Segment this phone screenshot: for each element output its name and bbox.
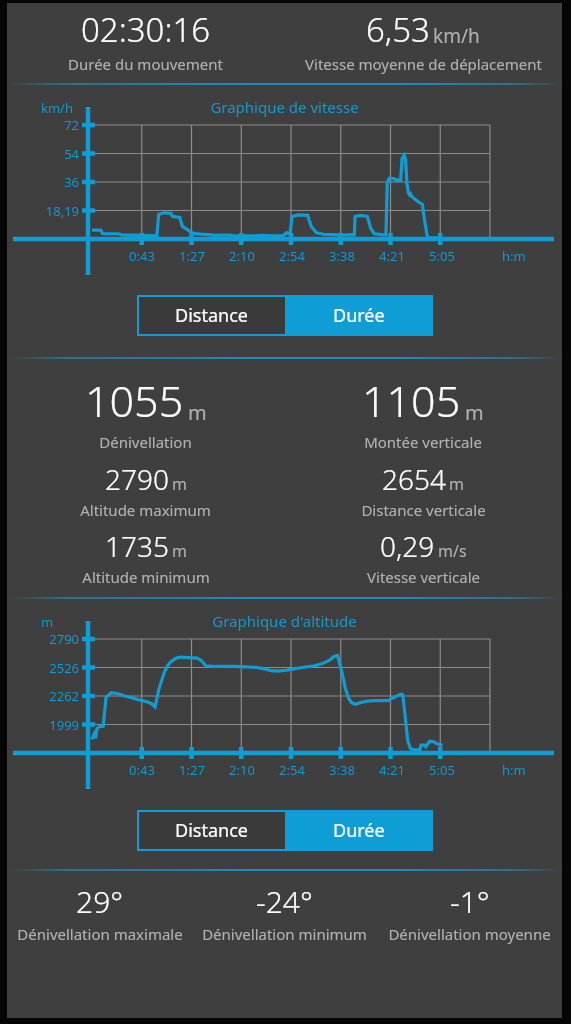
button[interactable]: Distance (137, 810, 285, 851)
staticText: m (465, 399, 484, 426)
staticText: 1999 (7, 716, 79, 734)
staticText: 2:54 (262, 247, 322, 265)
staticText: 36 (7, 173, 79, 191)
staticText: 0:43 (112, 761, 172, 779)
staticText: 0:43 (112, 247, 172, 265)
staticText: 3:38 (312, 247, 372, 265)
staticText: 29° (76, 881, 124, 922)
staticText: Montée verticale (364, 432, 482, 452)
staticText: 5:05 (412, 761, 472, 779)
staticText: Dénivellation minimum (202, 924, 367, 944)
staticText: Graphique de vitesse (7, 97, 562, 117)
button[interactable]: Distance (137, 295, 285, 336)
staticText: 4:21 (362, 247, 422, 265)
staticText: 72 (7, 116, 79, 134)
staticText: 02:30:16 (81, 7, 211, 52)
staticText: m (188, 399, 207, 426)
staticText: m (41, 613, 54, 631)
staticText: km/h (433, 23, 480, 49)
staticText: Altitude minimum (82, 567, 210, 587)
staticText: m (449, 473, 464, 495)
staticText: m/s (438, 540, 467, 562)
staticText: 2654 (382, 460, 446, 498)
staticText: Distance (175, 818, 248, 843)
staticText: Altitude maximum (80, 500, 211, 520)
staticText: Graphique d'altitude (7, 611, 562, 631)
staticText: Distance verticale (361, 500, 486, 520)
staticText: 3:38 (312, 761, 372, 779)
staticText: 1105 (362, 371, 461, 430)
button[interactable]: Durée (285, 295, 433, 336)
staticText: 0,29 (380, 527, 435, 565)
staticText: Vitesse verticale (367, 567, 480, 587)
staticText: km/h (41, 99, 73, 117)
staticText: Vitesse moyenne de déplacement (305, 54, 542, 74)
staticText: 1:27 (162, 761, 222, 779)
staticText: Durée (333, 818, 385, 843)
staticText: 4:21 (362, 761, 422, 779)
staticText: 2:10 (212, 247, 272, 265)
staticText: 1:27 (162, 247, 222, 265)
staticText: h:m (502, 761, 526, 779)
staticText: 18,19 (7, 202, 79, 220)
staticText: Durée (333, 303, 385, 328)
staticText: -1° (450, 881, 490, 922)
staticText: Durée du mouvement (68, 54, 223, 74)
staticText: 5:05 (412, 247, 472, 265)
staticText: m (172, 473, 187, 495)
staticText: 2:10 (212, 761, 272, 779)
staticText: Dénivellation (99, 432, 192, 452)
staticText: 1735 (105, 527, 169, 565)
staticText: 2526 (7, 659, 79, 677)
staticText: 2790 (105, 460, 169, 498)
staticText: 2790 (7, 630, 79, 648)
staticText: 2262 (7, 687, 79, 705)
staticText: 1055 (85, 371, 184, 430)
staticText: Distance (175, 303, 248, 328)
staticText: Dénivellation moyenne (388, 924, 551, 944)
staticText: 6,53 (366, 7, 430, 52)
staticText: h:m (502, 247, 526, 265)
staticText: Dénivellation maximale (17, 924, 183, 944)
staticText: m (172, 540, 187, 562)
staticText: 54 (7, 145, 79, 163)
staticText: -24° (256, 881, 313, 922)
staticText: 2:54 (262, 761, 322, 779)
button[interactable]: Durée (285, 810, 433, 851)
